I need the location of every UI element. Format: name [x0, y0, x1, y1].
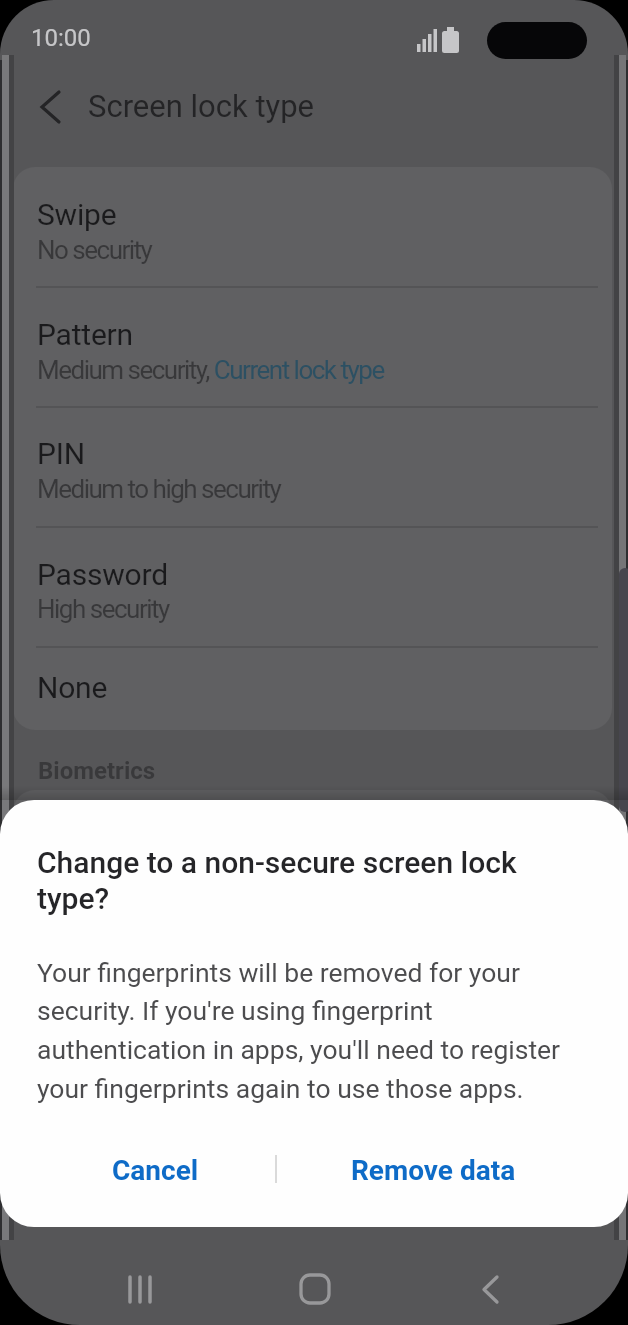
staticText: Swipe [37, 197, 117, 232]
staticText: PIN [37, 436, 85, 471]
button[interactable] [13, 647, 612, 730]
staticText: Password [37, 557, 168, 592]
button[interactable] [460, 1260, 520, 1320]
staticText: No security [37, 235, 152, 265]
staticText: Remove data [351, 1154, 516, 1187]
button[interactable] [13, 287, 612, 407]
staticText: Medium security, Current lock type [37, 355, 384, 385]
staticText: Pattern [37, 317, 133, 352]
staticText: Cancel [112, 1154, 199, 1187]
staticText: High security [37, 594, 169, 624]
staticText: 10:00 [31, 24, 91, 52]
staticText: Change to a non-secure screen lock type? [37, 845, 517, 916]
staticText: Screen lock type [88, 88, 315, 124]
staticText: Medium to high security [37, 474, 281, 504]
button[interactable] [285, 1260, 345, 1320]
staticText: Your fingerprints will be removed for yo… [37, 957, 561, 1105]
button[interactable]: Cancel [90, 1146, 221, 1194]
staticText: Biometrics [38, 757, 156, 785]
button[interactable] [110, 1260, 170, 1320]
button[interactable]: Remove data [343, 1146, 523, 1194]
button[interactable] [13, 167, 612, 287]
button[interactable] [13, 527, 612, 647]
button[interactable] [22, 80, 78, 134]
staticText: None [37, 670, 108, 705]
button[interactable] [13, 407, 612, 527]
